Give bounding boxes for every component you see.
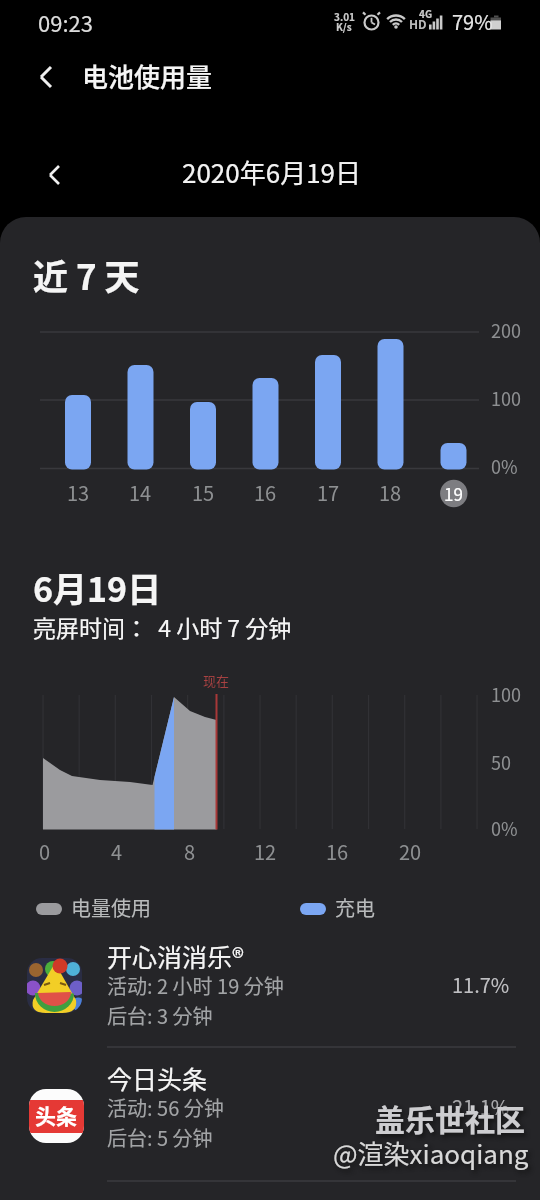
staticText: 0%: [491, 815, 518, 841]
staticText: 2020年6月19日: [182, 153, 362, 191]
staticText: 50: [491, 749, 511, 775]
staticText: 09:23: [38, 6, 93, 38]
staticText: 活动: 2 小时 19 分钟: [107, 971, 284, 1000]
button[interactable]: 2020年6月19日: [0, 150, 540, 200]
staticText: 13: [67, 478, 90, 507]
staticText: 今日头条: [107, 1060, 208, 1096]
staticText: 12: [254, 837, 277, 866]
staticText: 200: [491, 317, 521, 343]
staticText: 0%: [491, 453, 518, 479]
staticText: 3.01: [334, 9, 355, 23]
staticText: 6月19日: [33, 563, 162, 612]
staticText: 电量使用: [71, 893, 151, 922]
staticText: 电池使用量: [82, 57, 213, 95]
staticText: 79%: [452, 7, 493, 36]
staticText: 0: [39, 837, 51, 866]
staticText: 充电: [335, 893, 375, 922]
staticText: 100: [491, 385, 521, 411]
staticText: 16: [254, 478, 277, 507]
staticText: 开心消消乐®: [107, 938, 244, 974]
staticText: 18: [379, 478, 402, 507]
staticText: 活动: 56 分钟: [107, 1093, 224, 1122]
staticText: 16: [326, 837, 349, 866]
staticText: 19: [444, 481, 463, 506]
staticText: 4G: [419, 6, 433, 20]
staticText: 21.1%: [452, 1092, 510, 1121]
staticText: 盖乐世社区: [375, 1096, 525, 1139]
staticText: 头条: [35, 1100, 77, 1130]
staticText: 现在: [203, 671, 230, 690]
staticText: 亮屏时间： 4 小时 7 分钟: [33, 610, 292, 643]
staticText: @渲染xiaoqiang: [333, 1134, 529, 1172]
staticText: 近 7 天: [33, 249, 140, 300]
staticText: 100: [491, 681, 521, 707]
staticText: 后台: 3 分钟: [107, 1001, 213, 1030]
staticText: 17: [317, 478, 340, 507]
button[interactable]: [0, 1050, 540, 1181]
staticText: 11.7%: [452, 970, 510, 999]
staticText: 20: [399, 837, 422, 866]
staticText: 8: [184, 837, 196, 866]
staticText: 后台: 5 分钟: [107, 1123, 213, 1152]
staticText: HD: [409, 15, 427, 32]
staticText: K/s: [336, 19, 352, 33]
staticText: 14: [129, 478, 152, 507]
staticText: 4: [111, 837, 123, 866]
staticText: 15: [192, 478, 215, 507]
button[interactable]: [0, 940, 540, 1048]
button[interactable]: [26, 57, 66, 97]
